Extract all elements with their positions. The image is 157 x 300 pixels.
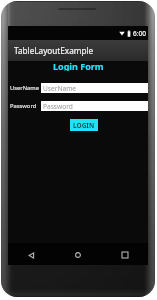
- button[interactable]: UserName: [41, 83, 148, 93]
- staticText: LOGIN: [73, 121, 95, 130]
- button[interactable]: Password: [41, 101, 148, 111]
- staticText: TableLayoutExample: [14, 45, 94, 56]
- staticText: UserName: [10, 84, 40, 92]
- staticText: UserName: [43, 84, 77, 93]
- button[interactable]: LOGIN: [70, 119, 98, 131]
- staticText: Password: [43, 102, 73, 111]
- staticText: 6:00: [133, 29, 146, 38]
- button[interactable]: Recent apps: [101, 245, 148, 265]
- button[interactable]: Home: [54, 245, 101, 265]
- staticText: Login Form: [53, 60, 104, 71]
- staticText: Password: [10, 102, 37, 110]
- button[interactable]: Back: [8, 245, 54, 265]
